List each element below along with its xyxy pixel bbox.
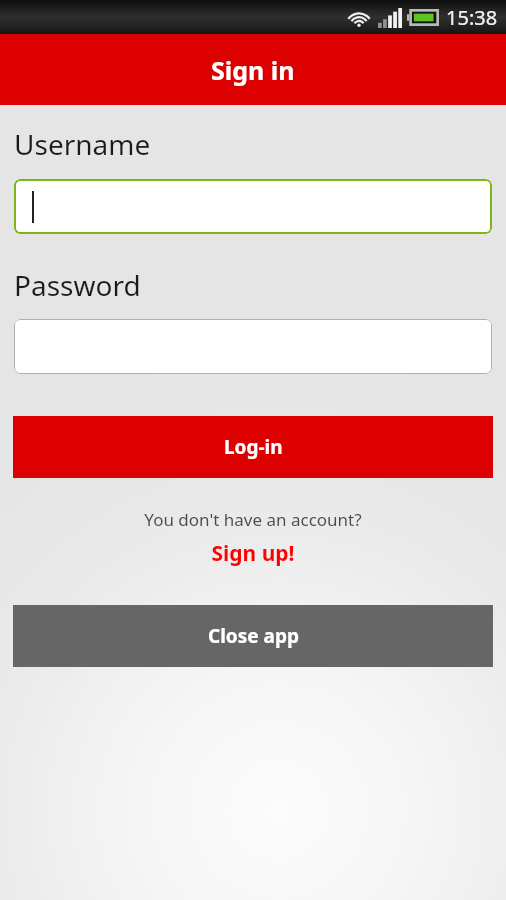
other: Mobile signal strength — [378, 8, 402, 28]
other: Battery level — [407, 9, 439, 26]
button[interactable]: Sign up! — [0, 539, 506, 568]
staticText: Password — [14, 266, 141, 304]
button[interactable]: Log-in — [13, 416, 493, 478]
button[interactable] — [14, 179, 492, 234]
staticText: Log-in — [224, 434, 283, 460]
other: Wi-Fi signal — [346, 8, 372, 28]
staticText: Sign in — [211, 53, 295, 87]
button[interactable] — [14, 319, 492, 374]
staticText: You don't have an account? — [0, 508, 506, 531]
staticText: Close app — [208, 623, 299, 649]
staticText: 15:38 — [446, 4, 498, 31]
button[interactable]: Close app — [13, 605, 493, 667]
staticText: Sign up! — [211, 539, 295, 568]
staticText: Username — [14, 125, 151, 163]
